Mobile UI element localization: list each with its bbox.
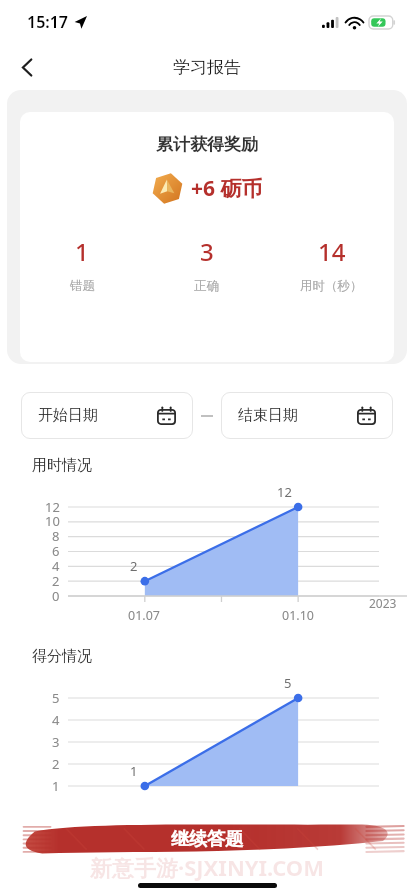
staticText: 正确: [194, 278, 219, 294]
staticText: 学习报告: [173, 57, 241, 78]
staticText: 2: [130, 557, 138, 575]
staticText: 2: [52, 572, 60, 590]
staticText: 错题: [70, 278, 95, 294]
staticText: 14: [318, 235, 346, 268]
staticText: 4: [52, 557, 60, 575]
staticText: 12: [45, 498, 60, 516]
staticText: 01.10: [282, 607, 314, 624]
staticText: 10: [45, 512, 60, 530]
button[interactable]: 结束日期: [221, 392, 393, 439]
staticText: 2: [52, 755, 60, 773]
staticText: 累计获得奖励: [156, 134, 258, 155]
staticText: 5: [52, 689, 60, 707]
staticText: 结束日期: [238, 406, 298, 425]
staticText: 1: [130, 762, 138, 780]
staticText: 2023: [369, 595, 397, 611]
staticText: 12: [277, 483, 292, 501]
staticText: 开始日期: [38, 406, 98, 425]
staticText: 继续答题: [171, 828, 243, 851]
staticText: 4: [52, 711, 60, 729]
staticText: 3: [200, 235, 214, 268]
staticText: 0: [52, 587, 60, 605]
staticText: 5: [284, 674, 292, 692]
button[interactable]: Back: [7, 47, 47, 87]
staticText: 新意手游·SJXINYI.COM: [90, 852, 325, 882]
staticText: 1: [75, 235, 89, 268]
staticText: 8: [52, 527, 60, 545]
button[interactable]: 继续答题: [0, 820, 414, 858]
staticText: 15:17: [27, 11, 69, 33]
staticText: 用时（秒）: [300, 278, 363, 294]
staticText: 得分情况: [32, 647, 92, 666]
staticText: 6: [52, 542, 60, 560]
button[interactable]: 开始日期: [21, 392, 193, 439]
staticText: 3: [52, 733, 60, 751]
staticText: +6 砺币: [191, 174, 263, 203]
staticText: 用时情况: [32, 456, 92, 475]
staticText: 01.07: [128, 607, 160, 624]
staticText: 1: [52, 777, 60, 795]
